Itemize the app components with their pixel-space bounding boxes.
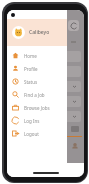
- button[interactable]: Find a Job: [7, 88, 67, 101]
- button[interactable]: Account: [71, 142, 79, 150]
- button[interactable]: Home: [7, 49, 67, 62]
- staticText: Browse Jobs: [24, 105, 50, 111]
- staticText: Find a Job: [24, 92, 45, 98]
- button[interactable]: [10, 96, 81, 107]
- button[interactable]: Log Ins: [7, 114, 67, 127]
- button[interactable]: Profile: [7, 62, 67, 75]
- staticText: Logout: [24, 131, 39, 137]
- staticText: Profile: [24, 66, 38, 72]
- button[interactable]: Status: [7, 75, 67, 88]
- button[interactable]: [10, 66, 81, 77]
- staticText: Home: [24, 53, 37, 59]
- button[interactable]: Browse Jobs: [7, 101, 67, 114]
- staticText: Status: [24, 79, 38, 85]
- button[interactable]: [10, 51, 81, 62]
- button[interactable]: Calibeyo: [7, 19, 67, 46]
- button[interactable]: Logout: [7, 127, 67, 140]
- button[interactable]: Refresh: [68, 20, 79, 31]
- button[interactable]: [10, 111, 81, 122]
- button[interactable]: [10, 81, 81, 92]
- staticText: Calibeyo: [29, 29, 50, 36]
- staticText: Log Ins: [24, 118, 40, 124]
